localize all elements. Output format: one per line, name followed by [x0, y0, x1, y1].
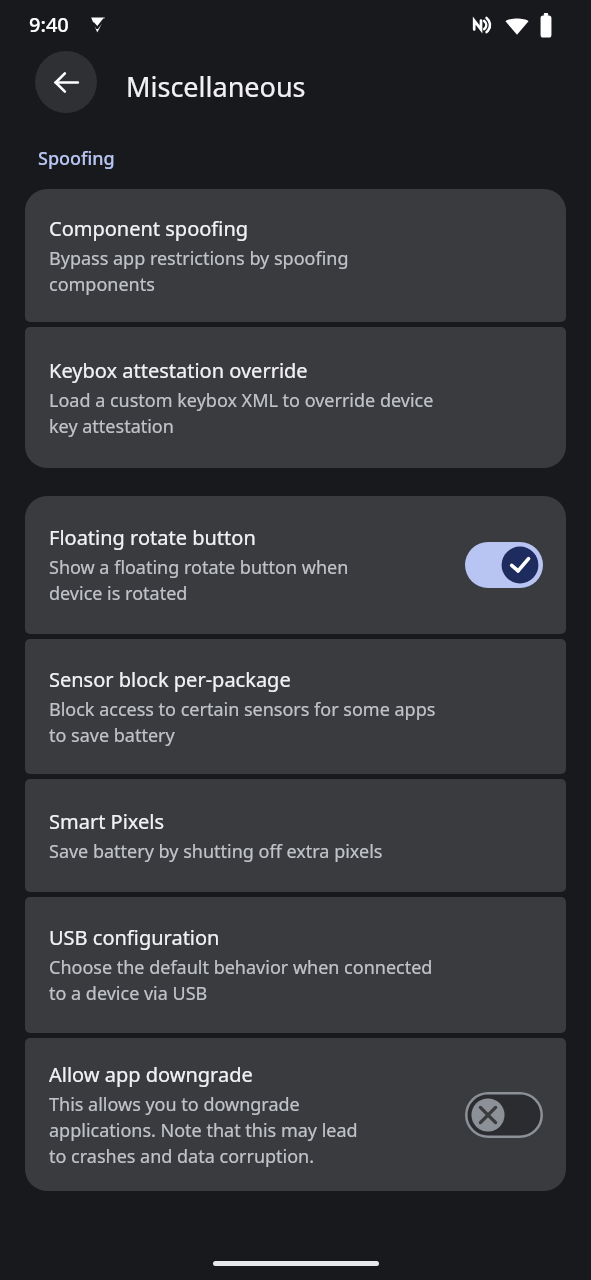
- staticText: Smart Pixels: [49, 808, 165, 835]
- staticText: Bypass app restrictions by spoofing comp…: [49, 246, 349, 297]
- button[interactable]: Sensor block per-package: [25, 639, 566, 774]
- staticText: Allow app downgrade: [49, 1061, 253, 1088]
- staticText: Component spoofing: [49, 215, 249, 242]
- button[interactable]: Smart Pixels: [25, 779, 566, 892]
- staticText: Show a floating rotate button when devic…: [49, 555, 349, 606]
- staticText: Miscellaneous: [126, 68, 306, 105]
- button[interactable]: Back: [35, 51, 97, 113]
- staticText: This allows you to downgrade application…: [49, 1092, 358, 1169]
- staticText: Load a custom keybox XML to override dev…: [49, 388, 434, 439]
- staticText: Spoofing: [38, 146, 115, 171]
- staticText: Floating rotate button: [49, 524, 256, 551]
- button[interactable]: USB configuration: [25, 897, 566, 1033]
- button[interactable]: Keybox attestation override: [25, 327, 566, 468]
- staticText: USB configuration: [49, 924, 220, 951]
- staticText: Keybox attestation override: [49, 357, 308, 384]
- staticText: 9:40: [29, 11, 69, 38]
- staticText: Block access to certain sensors for some…: [49, 697, 436, 748]
- button[interactable]: Off: [465, 1092, 543, 1138]
- button[interactable]: On: [465, 542, 543, 588]
- staticText: Sensor block per-package: [49, 666, 291, 693]
- button[interactable]: Allow app downgrade: [25, 1038, 566, 1191]
- button[interactable]: Component spoofing: [25, 189, 566, 322]
- staticText: Choose the default behavior when connect…: [49, 955, 433, 1006]
- staticText: Save battery by shutting off extra pixel…: [49, 839, 383, 864]
- button[interactable]: Floating rotate button: [25, 496, 566, 634]
